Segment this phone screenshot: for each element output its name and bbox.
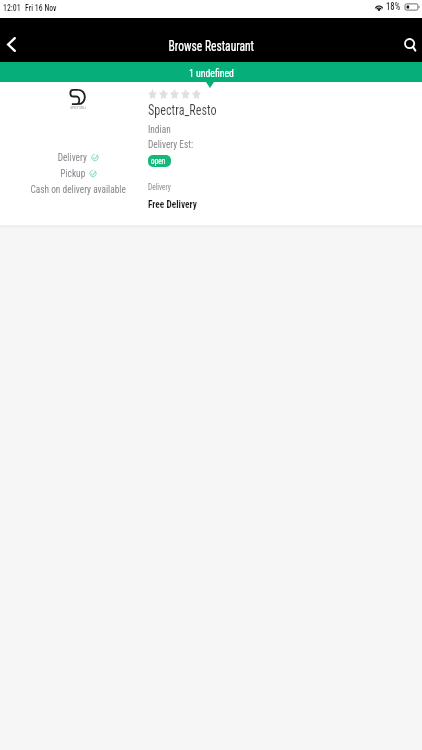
staticText: Delivery Est: [148, 138, 194, 151]
staticText: Delivery [58, 151, 87, 164]
staticText: 12:01 [3, 2, 21, 13]
staticText: open [151, 156, 165, 166]
staticText: 18% [386, 1, 400, 13]
button[interactable]: SPICY DELI [0, 82, 422, 225]
staticText: Pickup [60, 167, 86, 180]
staticText: Fri 16 Nov [25, 2, 57, 13]
button[interactable]: Search [386, 18, 422, 62]
staticText: Spectra_Resto [148, 102, 217, 118]
staticText: 1 undefined [189, 66, 234, 79]
button[interactable]: Back [0, 18, 34, 62]
staticText: Free Delivery [148, 198, 197, 211]
staticText: Cash on delivery available [30, 183, 127, 196]
staticText: SPICY DELI [70, 106, 86, 110]
staticText: Delivery [148, 182, 171, 192]
staticText: Indian [148, 123, 171, 136]
staticText: Browse Restaurant [169, 37, 254, 55]
